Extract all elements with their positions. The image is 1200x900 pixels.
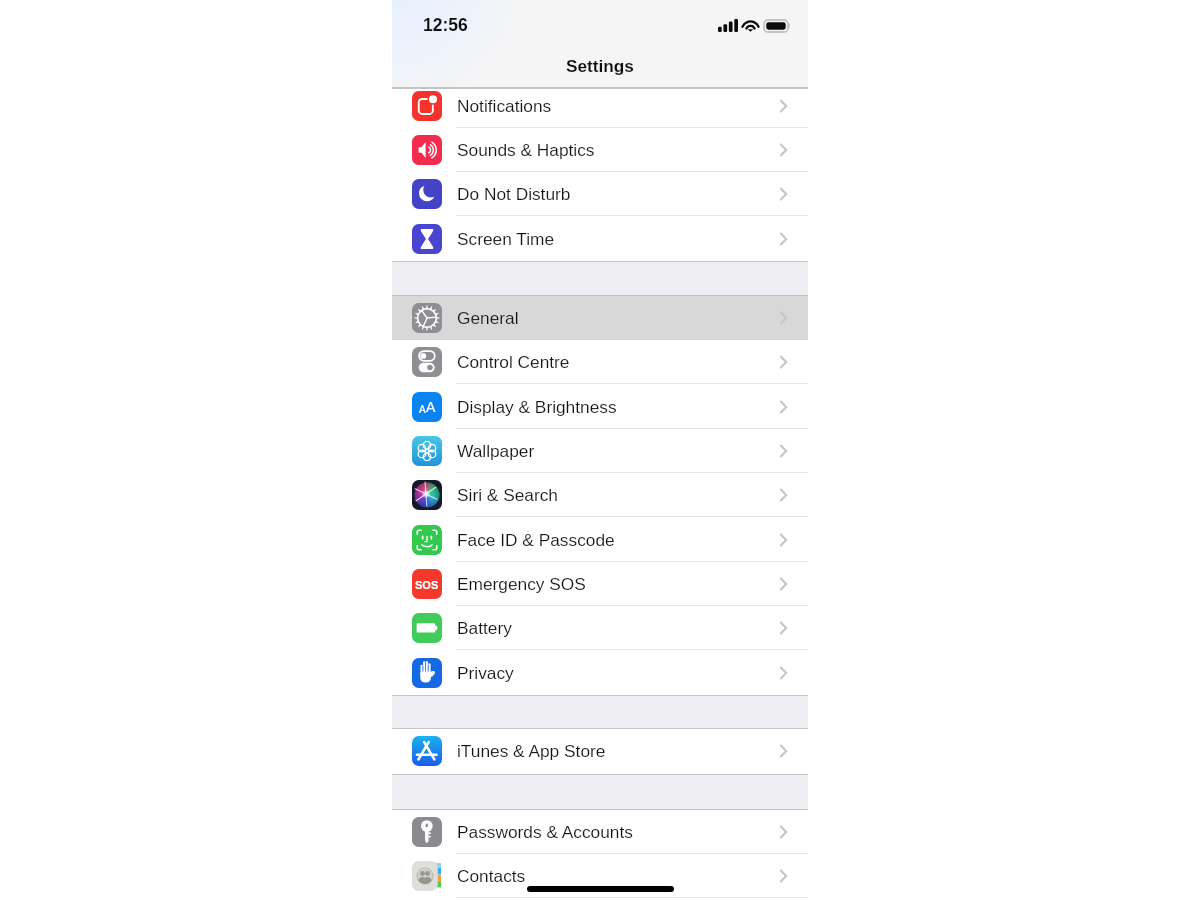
button[interactable]: Screen Time [392, 217, 808, 261]
button[interactable]: Notifications [392, 84, 808, 128]
button[interactable]: Face ID & Passcode [392, 518, 808, 562]
staticText: Emergency SOS [457, 574, 586, 593]
staticText: Screen Time [457, 229, 555, 248]
staticText: Passwords & Accounts [457, 822, 633, 841]
staticText: A [419, 404, 426, 415]
staticText: General [457, 308, 519, 327]
staticText: Display & Brightness [457, 397, 617, 416]
staticText: iTunes & App Store [457, 741, 606, 760]
staticText: Wallpaper [457, 441, 535, 460]
staticText: Battery [457, 618, 512, 637]
button[interactable]: Wallpaper [392, 429, 808, 473]
staticText: Contacts [457, 866, 526, 885]
button[interactable]: Sounds & Haptics [392, 128, 808, 172]
button[interactable]: Contacts [392, 854, 808, 898]
button[interactable]: Battery [392, 606, 808, 650]
button[interactable]: iTunes & App Store [392, 729, 808, 773]
staticText: Control Centre [457, 352, 570, 371]
staticText: 12:56 [423, 15, 468, 35]
staticText: Do Not Disturb [457, 184, 571, 203]
button[interactable]: Do Not Disturb [392, 172, 808, 216]
button[interactable]: Passwords & Accounts [392, 810, 808, 854]
staticText: Privacy [457, 663, 514, 682]
staticText: Siri & Search [457, 485, 558, 504]
button[interactable]: Privacy [392, 651, 808, 695]
staticText: SOS [415, 579, 439, 591]
staticText: Notifications [457, 96, 552, 115]
staticText: Settings [566, 56, 634, 75]
staticText: Face ID & Passcode [457, 530, 615, 549]
button[interactable]: SOS [392, 562, 808, 606]
button[interactable]: Control Centre [392, 340, 808, 384]
button[interactable]: A [392, 385, 808, 429]
button[interactable]: Siri & Search [392, 473, 808, 517]
staticText: Sounds & Haptics [457, 140, 595, 159]
button[interactable]: General [392, 296, 808, 340]
staticText: A [426, 399, 436, 415]
